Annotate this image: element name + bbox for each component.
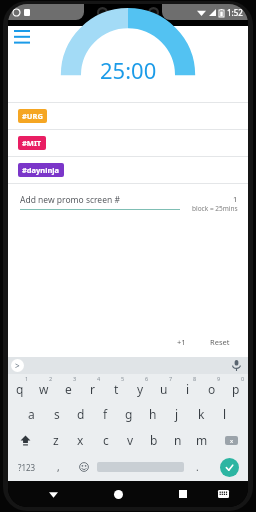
button[interactable]: s (44, 401, 69, 427)
staticText: . (196, 460, 199, 474)
staticText: 5 (121, 375, 125, 382)
staticText: m (196, 432, 208, 448)
staticText: +1 (177, 337, 186, 347)
button[interactable]: Voice input (231, 360, 242, 371)
button[interactable]: f (93, 401, 117, 427)
staticText: q (16, 381, 24, 397)
staticText: 7 (169, 375, 173, 382)
staticText: 0 (241, 375, 245, 382)
staticText: w (39, 381, 49, 397)
button[interactable]: m (190, 427, 214, 453)
button[interactable]: e (56, 374, 80, 401)
staticText: e (65, 381, 72, 397)
staticText: x (77, 432, 84, 448)
staticText: g (125, 406, 133, 422)
button[interactable]: u (152, 374, 176, 401)
button[interactable]: , (45, 453, 71, 481)
button[interactable]: a (19, 401, 44, 427)
button[interactable]: ?123 (8, 453, 45, 481)
staticText: 6 (145, 375, 149, 382)
staticText: Reset (210, 337, 230, 347)
staticText: > (15, 360, 20, 371)
button[interactable]: Switch keyboard (211, 482, 235, 506)
staticText: f (103, 406, 108, 422)
staticText: #URG (22, 111, 43, 121)
button[interactable]: d (69, 401, 93, 427)
button[interactable]: v (118, 427, 142, 453)
button[interactable]: Back (41, 482, 65, 506)
button[interactable]: h (141, 401, 165, 427)
button[interactable]: y (128, 374, 152, 401)
button[interactable]: #URG (8, 103, 248, 130)
button[interactable]: j (165, 401, 189, 427)
button[interactable]: q (8, 374, 32, 401)
button[interactable]: p (224, 374, 248, 401)
button[interactable]: g (117, 401, 141, 427)
staticText: ?123 (18, 462, 36, 473)
staticText: 8 (193, 375, 197, 382)
staticText: , (57, 460, 60, 474)
staticText: c (103, 432, 109, 448)
button[interactable]: l (213, 401, 237, 427)
staticText: p (232, 381, 240, 397)
button[interactable]: Shift (8, 427, 43, 453)
button[interactable]: Enter (220, 458, 239, 477)
staticText: 3 (73, 375, 77, 382)
staticText: d (77, 406, 85, 422)
button[interactable]: #MIT (8, 130, 248, 157)
button[interactable]: Recents (171, 482, 195, 506)
staticText: o (208, 381, 216, 397)
button[interactable]: w (32, 374, 56, 401)
button[interactable]: Home (106, 482, 130, 506)
staticText: j (175, 406, 179, 422)
button[interactable]: Emoji (71, 453, 97, 481)
button[interactable]: t (104, 374, 128, 401)
staticText: y (137, 381, 144, 397)
staticText: block = 25mins (192, 204, 238, 213)
staticText: s (54, 406, 60, 422)
button[interactable]: Reset (206, 333, 234, 351)
button[interactable]: k (189, 401, 213, 427)
staticText: k (198, 406, 205, 422)
staticText: 4 (97, 375, 101, 382)
staticText: n (174, 432, 182, 448)
button[interactable]: Menu (14, 30, 30, 48)
button[interactable]: r (80, 374, 104, 401)
button[interactable]: o (200, 374, 224, 401)
staticText: z (53, 432, 59, 448)
staticText: 1:52 (227, 7, 243, 18)
staticText: #dayninja (22, 165, 60, 175)
staticText: i (186, 381, 190, 397)
staticText: a (28, 406, 35, 422)
button[interactable]: c (93, 427, 118, 453)
staticText: 25:00 (100, 55, 157, 85)
staticText: h (149, 406, 157, 422)
button[interactable]: x (68, 427, 93, 453)
staticText: v (127, 432, 134, 448)
staticText: t (114, 381, 119, 397)
staticText: Add new promo screen # (20, 194, 120, 206)
button[interactable]: n (166, 427, 190, 453)
staticText: r (90, 381, 95, 397)
staticText: u (160, 381, 168, 397)
button[interactable]: More suggestions (11, 359, 24, 372)
staticText: l (223, 406, 227, 422)
button[interactable]: +1 (169, 333, 194, 351)
staticText: 9 (217, 375, 221, 382)
button[interactable]: z (43, 427, 68, 453)
staticText: 1 (233, 194, 238, 204)
button[interactable]: b (142, 427, 166, 453)
button[interactable]: Backspace (214, 427, 248, 453)
button[interactable]: i (176, 374, 200, 401)
staticText: 2 (49, 375, 53, 382)
staticText: x (230, 437, 234, 445)
button[interactable]: #dayninja (8, 157, 248, 184)
staticText: b (150, 432, 158, 448)
staticText: 1 (25, 375, 29, 382)
button[interactable]: . (184, 453, 210, 481)
staticText: #MIT (22, 138, 42, 148)
